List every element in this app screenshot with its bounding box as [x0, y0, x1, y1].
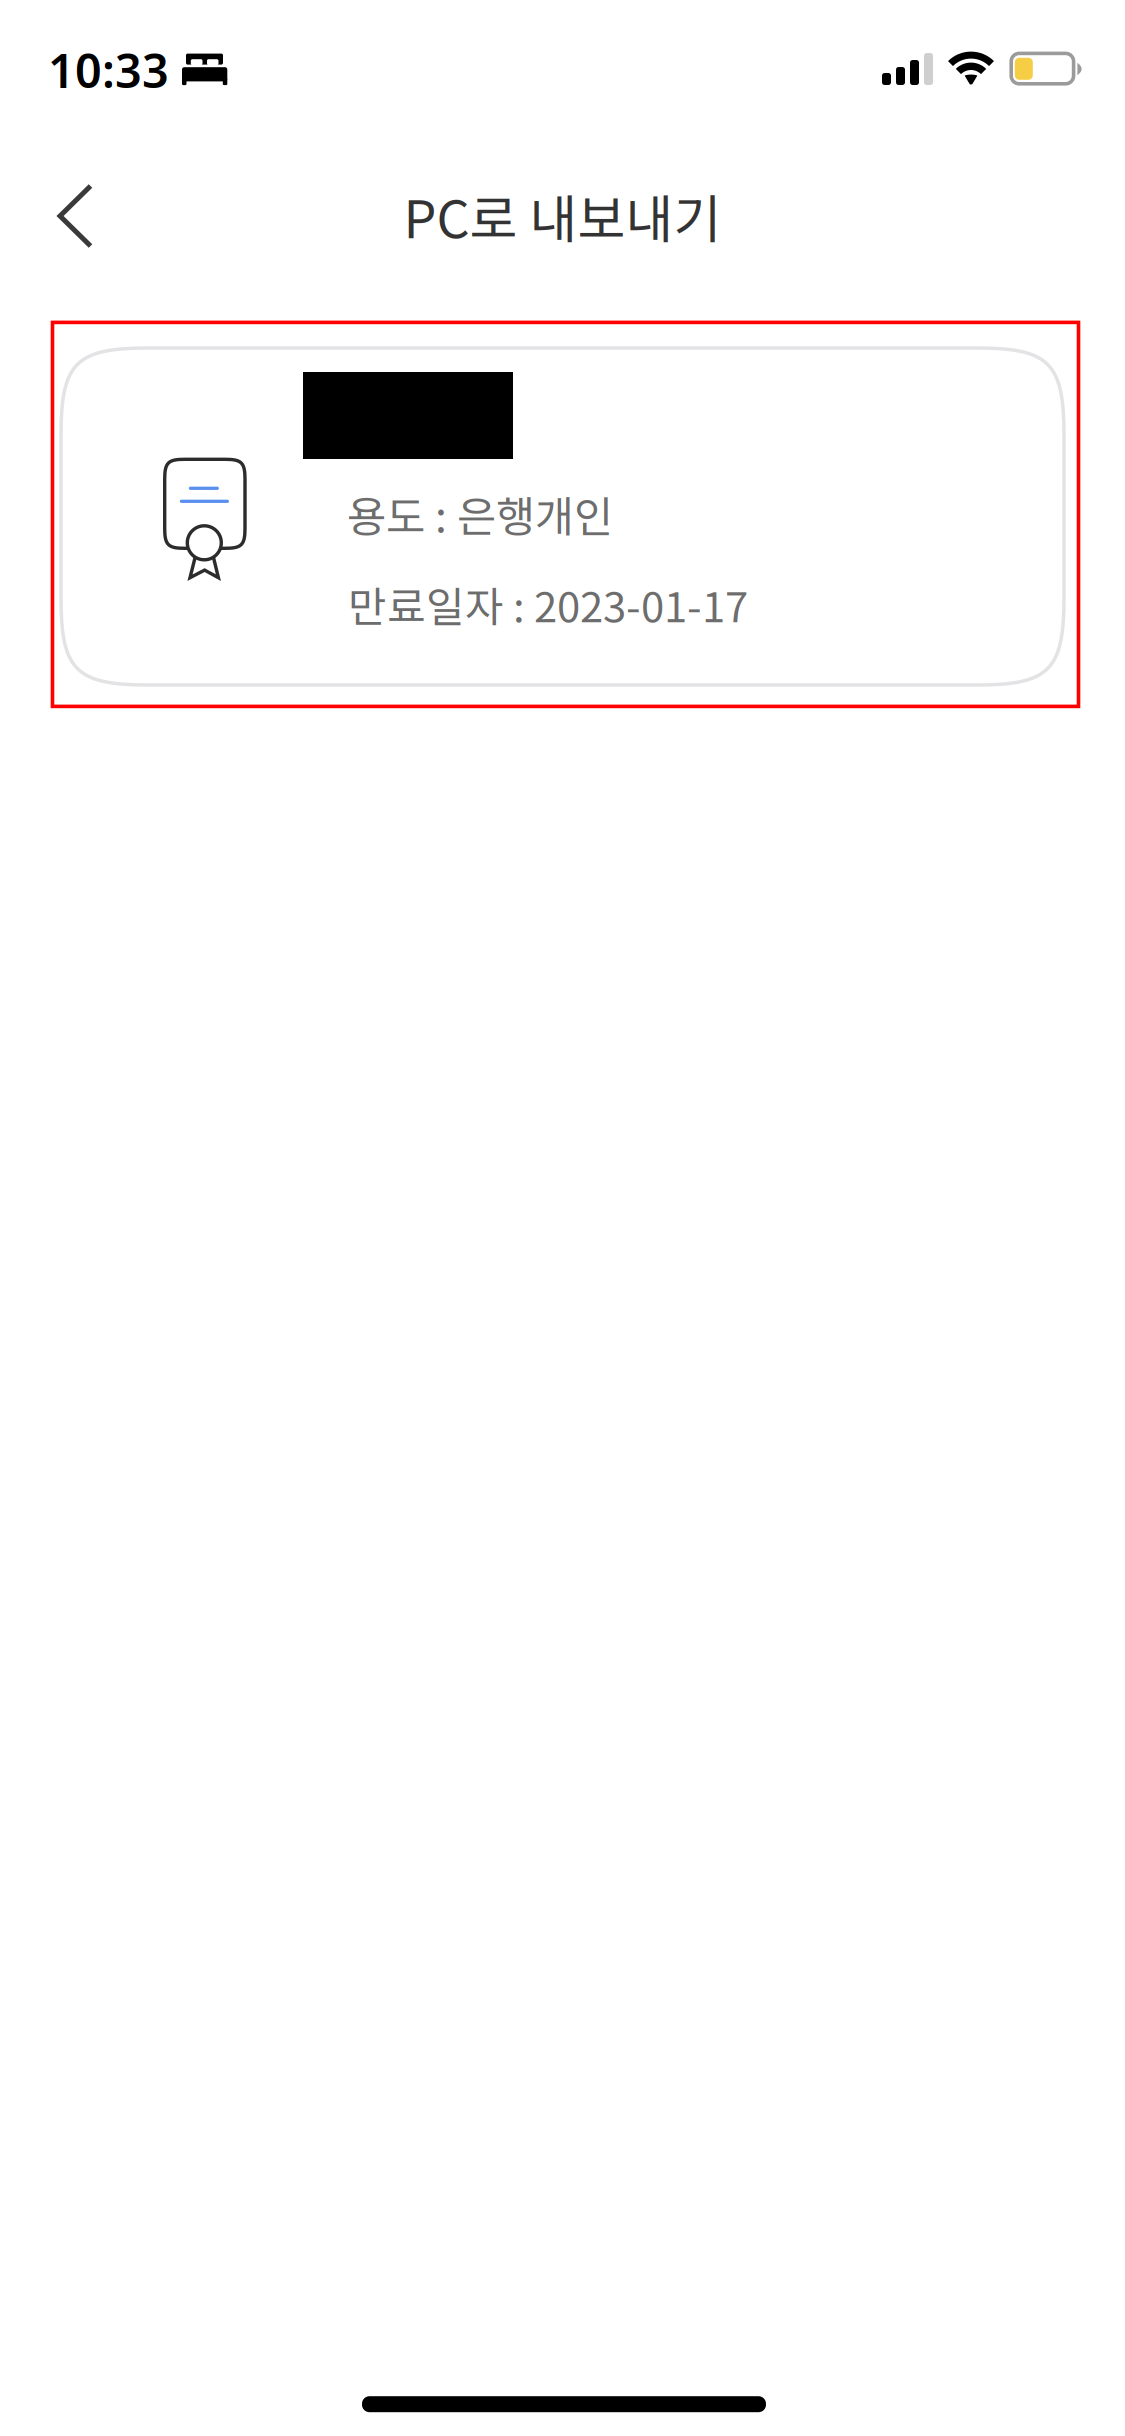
staticText: 10:33	[48, 39, 169, 101]
staticText: 만료일자 : 2023-01-17	[348, 574, 748, 634]
staticText: 용도 : 은행개인	[347, 483, 613, 545]
staticText: PC로 내보내기	[403, 178, 721, 253]
button[interactable]: Back	[33, 155, 117, 275]
button[interactable]: 용도 : 은행개인	[51, 322, 1079, 707]
